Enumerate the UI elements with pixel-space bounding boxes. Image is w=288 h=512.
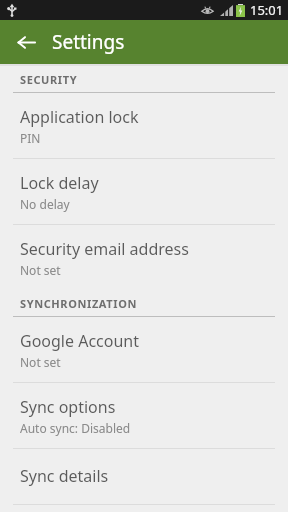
staticText: Security email address	[20, 238, 189, 260]
button[interactable]: Google Account	[0, 317, 288, 383]
staticText: Sync options	[20, 396, 116, 418]
staticText: Lock delay	[20, 172, 99, 194]
staticText: SYNCHRONIZATION	[20, 296, 137, 311]
button[interactable]: Sync options	[0, 383, 288, 449]
staticText: Not set	[20, 354, 61, 370]
staticText: Not set	[20, 262, 61, 278]
button[interactable]: Back	[10, 26, 42, 58]
staticText: 15:01	[250, 1, 284, 19]
staticText: PIN	[20, 130, 41, 146]
staticText: Google Account	[20, 330, 139, 352]
staticText: Application lock	[20, 106, 139, 128]
button[interactable]: Sync details	[0, 449, 288, 505]
staticText: Auto sync: Disabled	[20, 420, 131, 436]
staticText: Sync details	[20, 465, 109, 487]
button[interactable]: Security email address	[0, 225, 288, 290]
staticText: SECURITY	[20, 72, 78, 87]
staticText: Settings	[52, 29, 125, 55]
button[interactable]: Application lock	[0, 93, 288, 159]
staticText: No delay	[20, 196, 70, 212]
button[interactable]: Lock delay	[0, 159, 288, 225]
